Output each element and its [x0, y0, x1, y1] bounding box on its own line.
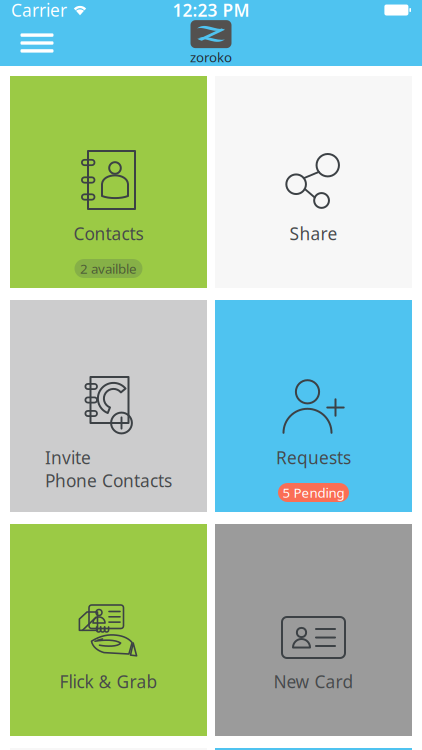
staticText: Requests [276, 446, 351, 469]
button[interactable]: zoroko home [190, 20, 232, 66]
staticText: Share [289, 222, 337, 245]
button[interactable]: Share [215, 76, 412, 288]
button[interactable]: Requests [215, 300, 412, 512]
staticText: Flick & Grab [59, 670, 157, 693]
staticText: Carrier [11, 0, 67, 21]
button[interactable]: Menu [14, 20, 60, 66]
staticText: 12:23 PM [172, 0, 249, 21]
staticText: 2 availble [80, 260, 137, 277]
staticText: Invite Phone Contacts [45, 446, 172, 492]
button[interactable]: Contacts [10, 76, 207, 288]
staticText: Contacts [73, 222, 143, 245]
button[interactable]: New Card [215, 524, 412, 736]
staticText: New Card [273, 670, 353, 693]
button[interactable]: Invite Phone Contacts [10, 300, 207, 512]
staticText: 5 Pending [282, 484, 344, 501]
button[interactable]: Flick & Grab [10, 524, 207, 736]
staticText: zoroko [190, 48, 232, 66]
